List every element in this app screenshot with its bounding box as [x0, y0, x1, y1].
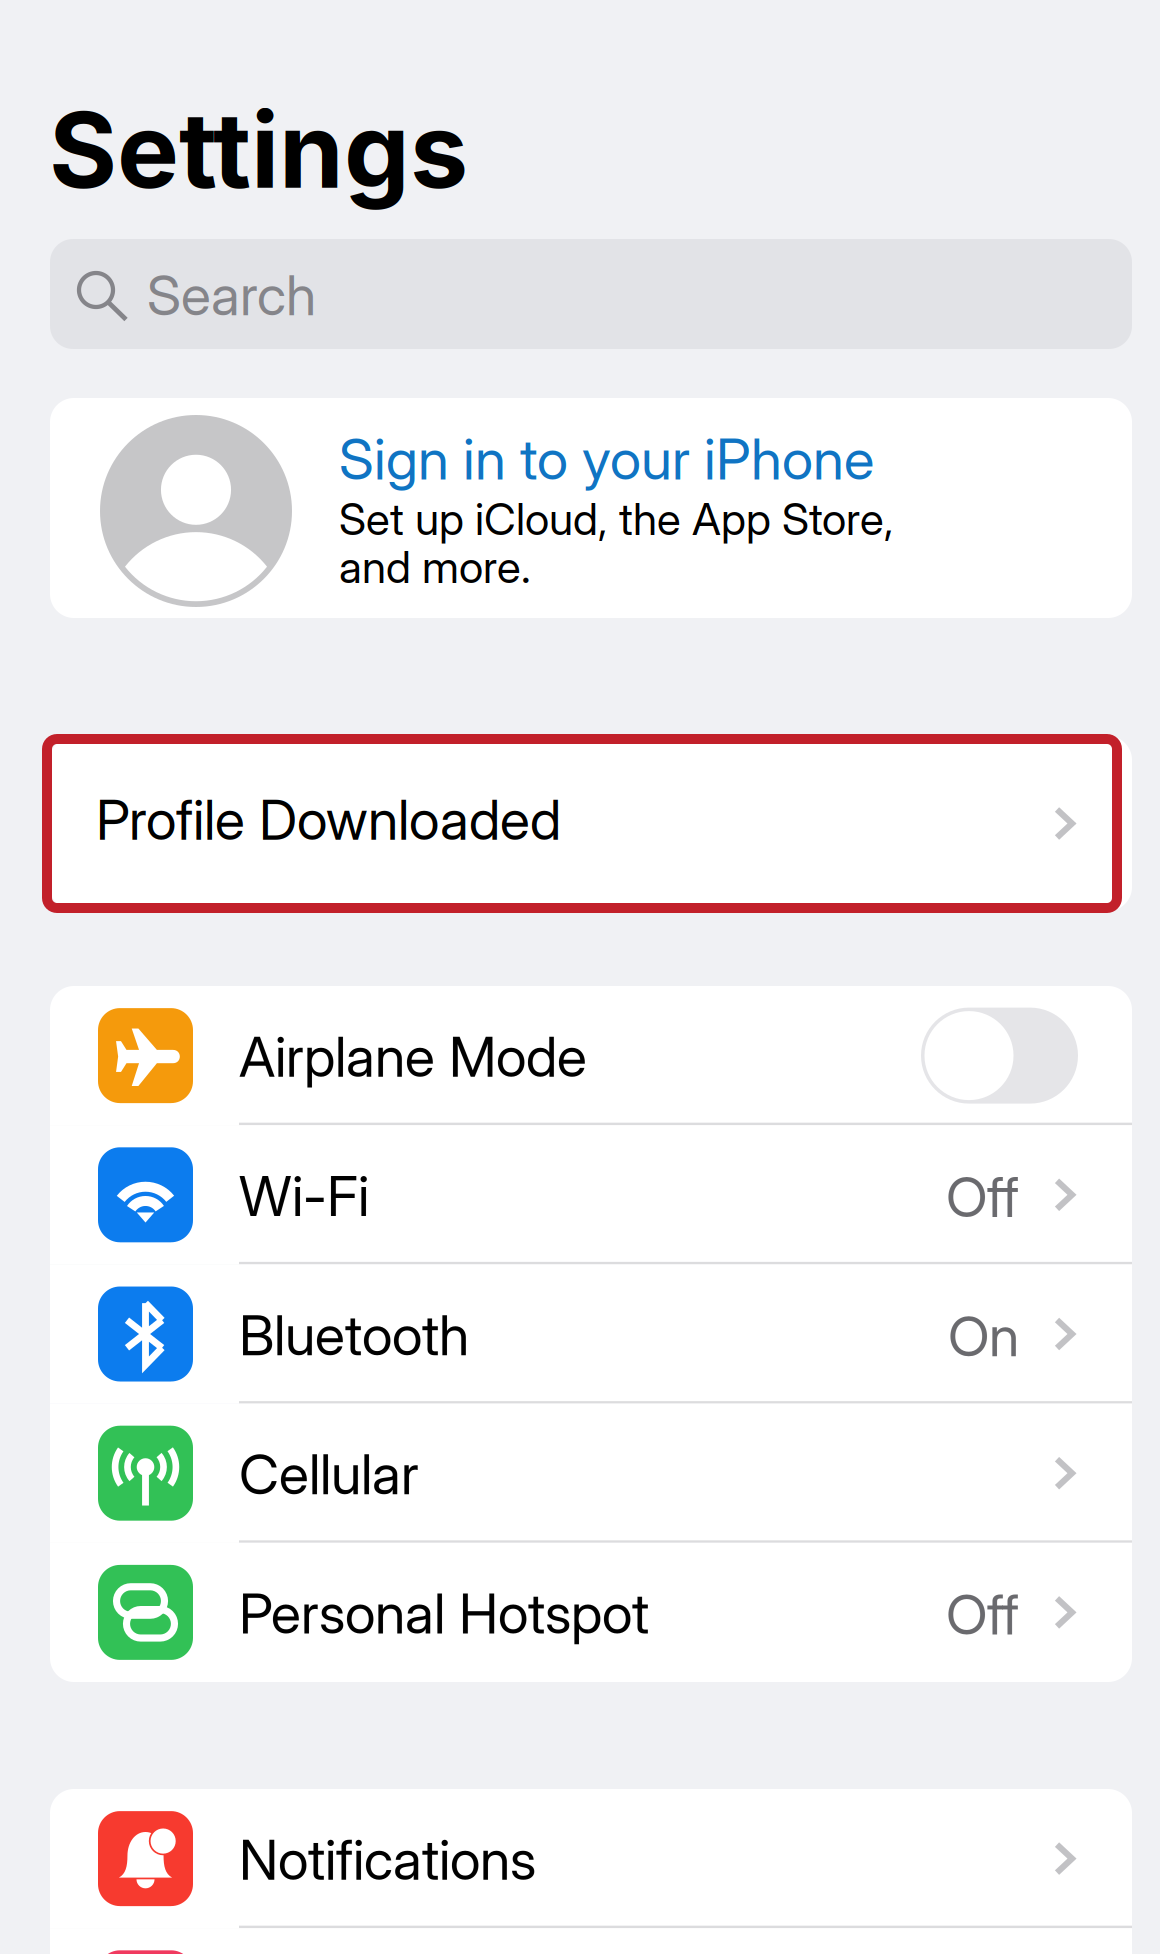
button[interactable]: Cellular	[50, 1404, 1132, 1543]
staticText: Airplane Mode	[239, 1023, 587, 1090]
button[interactable]: Profile Downloaded	[50, 736, 1132, 911]
button[interactable]: Search	[50, 239, 1132, 349]
button[interactable]: Wi-Fi	[50, 1125, 1132, 1264]
staticText: Profile Downloaded	[96, 786, 561, 853]
button[interactable]: Sign in to your iPhone	[50, 398, 1132, 618]
staticText: Bluetooth	[239, 1301, 469, 1368]
staticText: Search	[147, 261, 316, 328]
button[interactable]: Airplane Mode	[50, 986, 1132, 1125]
staticText: Sign in to your iPhone	[339, 425, 874, 493]
staticText: Set up iCloud, the App Store,	[339, 492, 894, 546]
staticText: On	[948, 1302, 1019, 1369]
staticText: Wi-Fi	[239, 1162, 369, 1229]
button[interactable]: Bluetooth	[50, 1264, 1132, 1404]
button[interactable]: Personal Hotspot	[50, 1543, 1132, 1682]
button[interactable]: Sounds & Haptics	[50, 1928, 1132, 1954]
staticText: Notifications	[239, 1826, 536, 1893]
staticText: Personal Hotspot	[239, 1580, 649, 1647]
staticText: and more.	[339, 540, 531, 594]
button[interactable]: Notifications	[50, 1789, 1132, 1928]
staticText: Settings	[49, 87, 468, 213]
staticText: Off	[946, 1581, 1019, 1648]
staticText: Off	[946, 1163, 1019, 1230]
staticText: Cellular	[239, 1441, 419, 1508]
